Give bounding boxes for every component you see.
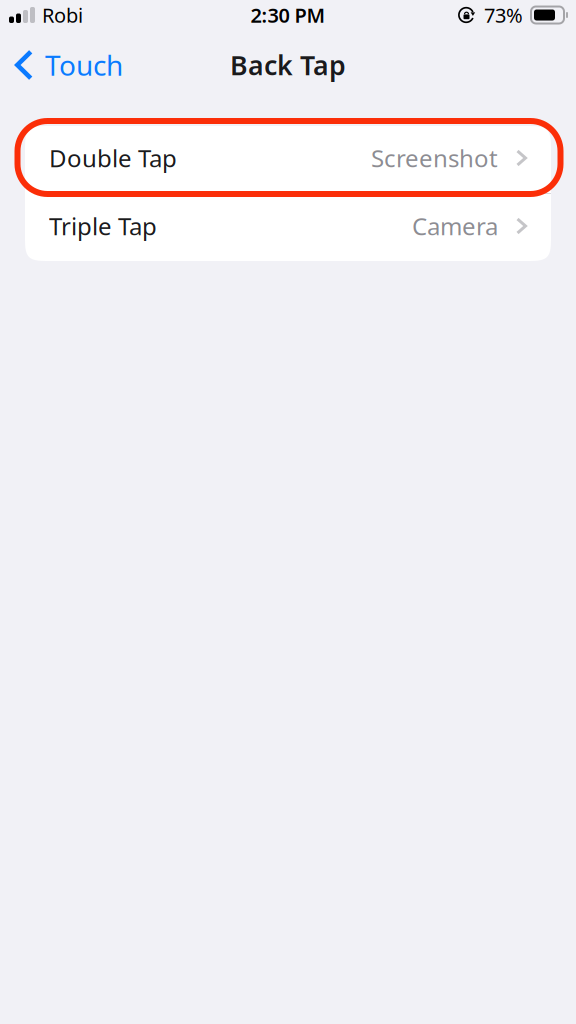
staticText: Screenshot	[371, 142, 498, 174]
staticText: Touch	[45, 46, 123, 84]
staticText: Robi	[42, 2, 83, 28]
staticText: Camera	[412, 210, 498, 242]
button[interactable]: Back to Touch	[0, 41, 135, 89]
staticText: Double Tap	[49, 142, 177, 174]
button[interactable]: Double Tap	[25, 126, 551, 193]
staticText: 73%	[484, 2, 523, 28]
staticText: Back Tap	[230, 47, 346, 83]
button[interactable]: Triple Tap	[25, 194, 551, 261]
staticText: 2:30 PM	[250, 2, 325, 28]
staticText: Triple Tap	[49, 210, 157, 242]
